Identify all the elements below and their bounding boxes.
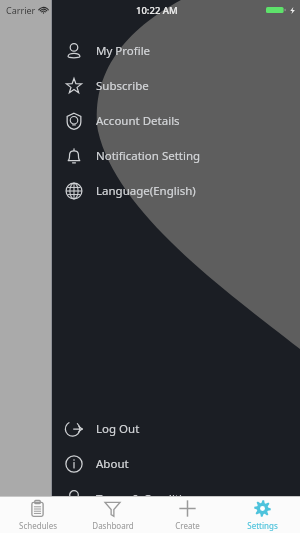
button[interactable]: Terms & Conditions <box>52 481 300 516</box>
staticText: 10:22 AM <box>136 4 178 17</box>
staticText: Terms & Conditions <box>96 491 202 507</box>
button[interactable]: About <box>52 446 300 481</box>
staticText: Log Out <box>96 421 140 437</box>
button[interactable]: My Profile <box>52 33 300 68</box>
button[interactable]: Notification Setting <box>52 138 300 173</box>
staticText: Settings <box>247 520 278 531</box>
staticText: Notification Setting <box>96 148 201 164</box>
staticText: Create <box>175 520 200 531</box>
button[interactable]: Account Details <box>52 103 300 138</box>
staticText: Dashboard <box>92 520 134 531</box>
staticText: Subscribe <box>96 78 149 94</box>
staticText: Schedules <box>19 520 57 531</box>
button[interactable]: Log Out <box>52 411 300 446</box>
button[interactable]: Settings <box>225 497 300 533</box>
staticText: About <box>96 456 129 472</box>
staticText: Account Details <box>96 113 180 129</box>
button[interactable]: Subscribe <box>52 68 300 103</box>
staticText: My Profile <box>96 43 151 59</box>
button[interactable]: Language(English) <box>52 173 300 208</box>
button[interactable]: Create <box>150 497 225 533</box>
staticText: Language(English) <box>96 183 196 199</box>
staticText: Carrier <box>6 4 36 16</box>
button[interactable]: Schedules <box>0 497 75 533</box>
button[interactable]: Dashboard <box>75 497 150 533</box>
